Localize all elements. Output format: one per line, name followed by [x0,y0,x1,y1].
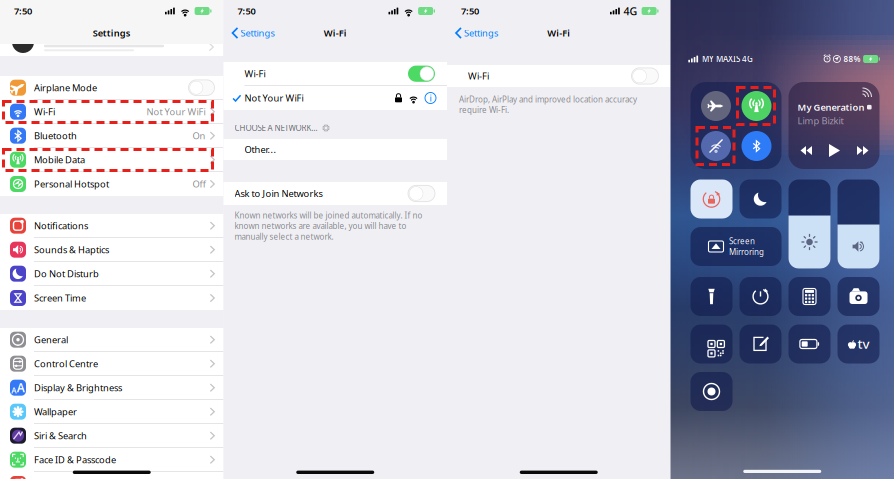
button[interactable]: Calculator [788,277,830,316]
staticText: On [193,129,206,142]
button[interactable]: Sounds & Haptics [0,238,223,262]
button[interactable]: Scan QR Code [690,324,732,363]
button[interactable]: Screen Recording [690,372,732,411]
staticText: Face ID & Passcode [34,453,116,466]
button[interactable]: Do Not Disturb [739,179,781,218]
staticText: Mobile Data [34,153,85,166]
button[interactable]: Wallpaper [0,400,223,424]
staticText: Mirroring [729,246,764,257]
staticText: Settings [93,27,131,39]
staticText: Settings [241,27,275,39]
staticText: Wi-Fi [244,67,265,80]
button[interactable]: Wi-Fi [0,100,223,124]
button[interactable]: Brightness [788,179,830,268]
staticText: Wi-Fi [34,105,55,118]
button[interactable]: Emergency SOS [0,472,223,479]
button[interactable]: Torch [690,277,732,316]
staticText: 7:50 [237,5,255,17]
button[interactable]: Screen Time [0,286,223,310]
button[interactable]: Wi-Fi [701,131,731,161]
staticText: Airplane Mode [34,81,97,94]
staticText: 4G [624,4,638,18]
staticText: Screen [729,236,755,246]
staticText: Wallpaper [34,405,77,418]
staticText: CHOOSE A NETWORK... [234,123,317,133]
staticText: Not Your WiFi [244,92,303,104]
staticText: Limp Bizkit [797,114,843,127]
staticText: Control Centre [34,357,98,370]
button[interactable]: Siri & Search [0,424,223,448]
staticText: Notifications [34,219,88,232]
staticText: Wi-Fi [468,70,489,82]
staticText: Wi-Fi [547,27,570,39]
staticText: Screen Time [34,292,86,304]
staticText: Bluetooth [34,129,77,142]
staticText: i [429,92,431,104]
button[interactable]: Camera [837,277,879,316]
button[interactable]: Settings [223,22,275,44]
staticText: Display & Brightness [34,381,122,394]
staticText: Ask to Join Networks [234,187,322,200]
button[interactable]: Bluetooth [741,131,771,161]
staticText: Other... [244,143,276,156]
button[interactable]: Timer [739,277,781,316]
button[interactable]: Low Power Mode [788,324,830,363]
staticText: AirDrop, AirPlay and improved location a… [459,94,637,115]
button[interactable]: Volume [837,179,879,268]
button[interactable]: Screen Mirroring [690,227,781,266]
staticText: Wi-Fi [324,27,347,39]
button[interactable]: Bluetooth [0,124,223,148]
staticText: tv [857,335,869,352]
button[interactable]: Personal Hotspot [0,172,223,196]
button[interactable]: Notes [739,324,781,363]
staticText: Do Not Disturb [34,267,99,280]
staticText: Siri & Search [34,429,87,442]
button[interactable]: Notifications [0,214,223,238]
button[interactable]: Aeroplane Mode [701,91,731,121]
staticText: Sounds & Haptics [34,243,109,256]
button[interactable]: Now Playing [788,82,879,169]
staticText: Personal Hotspot [34,178,109,190]
button[interactable]: Apple TV Remote [837,324,879,363]
button[interactable]: Other... [223,139,447,160]
button[interactable]: Airplane Mode [0,76,223,100]
staticText: 7:50 [461,5,479,17]
staticText: 7:50 [14,5,32,17]
button[interactable]: Control Centre [0,352,223,376]
staticText: Off [193,178,206,190]
staticText: Known networks will be joined automatica… [234,210,422,242]
button[interactable]: A [0,376,223,400]
staticText: Not Your WiFi [147,105,206,118]
button[interactable]: Not Your WiFi [223,86,447,110]
button[interactable]: Rotation Lock [690,179,732,218]
button[interactable]: Mobile Data [741,91,771,121]
staticText: Settings [464,27,498,39]
staticText: MY MAXIS 4G [702,54,753,64]
staticText: 88% [844,54,861,64]
button[interactable]: General [0,328,223,352]
staticText: A [11,385,16,396]
button[interactable]: Settings [447,22,498,44]
button[interactable]: Mobile Data [0,148,223,172]
button[interactable]: Do Not Disturb [0,262,223,286]
staticText: A [17,380,25,396]
staticText: General [34,333,68,346]
button[interactable]: Face ID & Passcode [0,448,223,472]
staticText: My Generation [797,101,864,113]
